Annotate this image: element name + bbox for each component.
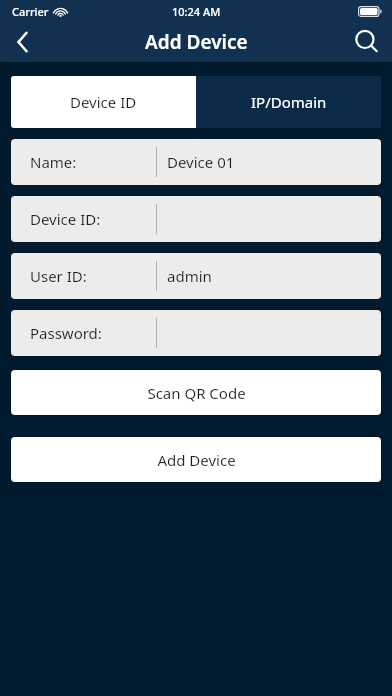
staticText: 10:24 AM xyxy=(172,4,221,19)
button[interactable]: Device ID: xyxy=(11,196,381,242)
staticText: Carrier xyxy=(12,4,49,19)
button[interactable]: Back xyxy=(0,22,46,62)
button[interactable]: Device ID xyxy=(11,76,196,128)
button[interactable]: Password: xyxy=(11,310,381,356)
staticText: User ID: xyxy=(30,266,87,286)
staticText: Add Device xyxy=(157,450,236,470)
button[interactable]: IP/Domain xyxy=(196,76,381,128)
button[interactable]: Name: xyxy=(11,139,381,185)
button[interactable]: User ID: xyxy=(11,253,381,299)
button[interactable]: Search xyxy=(342,22,392,62)
staticText: Device ID: xyxy=(30,209,101,229)
button[interactable]: Add Device xyxy=(11,437,381,482)
staticText: admin xyxy=(167,266,212,286)
staticText: Password: xyxy=(30,323,102,343)
staticText: Device ID xyxy=(70,92,137,112)
staticText: IP/Domain xyxy=(251,92,327,112)
staticText: Name: xyxy=(30,152,77,172)
staticText: Add Device xyxy=(145,29,248,55)
staticText: Scan QR Code xyxy=(147,383,246,403)
staticText: Device 01 xyxy=(167,152,235,172)
button[interactable]: Scan QR Code xyxy=(11,370,381,415)
